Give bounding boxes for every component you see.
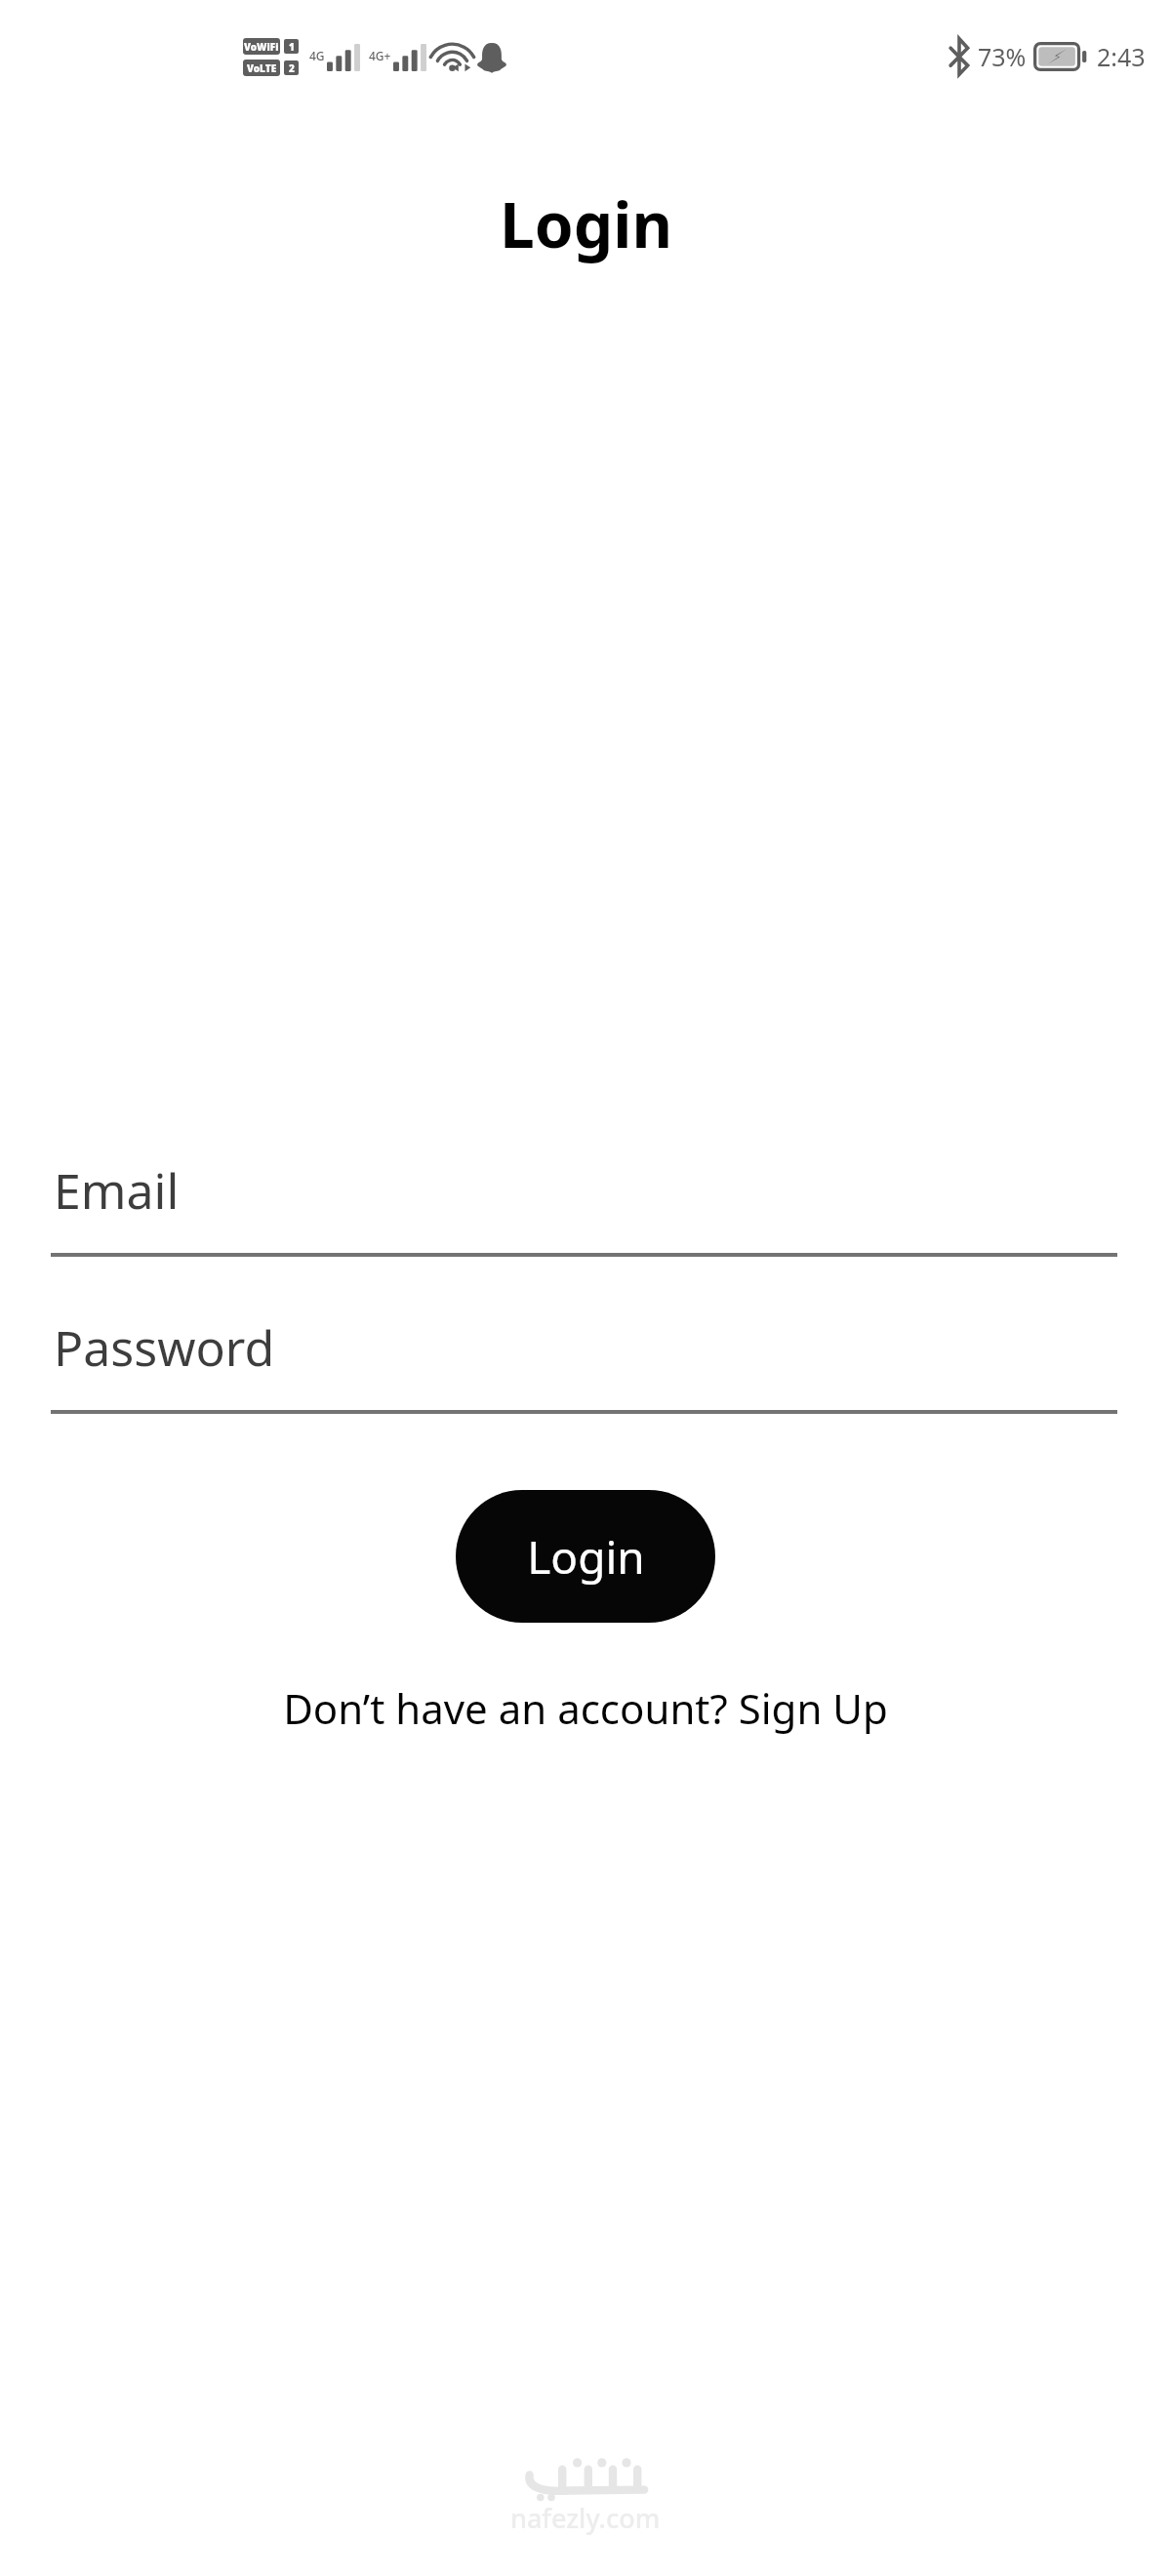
button[interactable]: Password [51, 1285, 1117, 1414]
staticText: Email [54, 1157, 180, 1224]
staticText: Password [54, 1314, 275, 1381]
staticText: Login [527, 1526, 645, 1588]
staticText: 4G [309, 48, 325, 63]
staticText: Don’t have an account? Sign Up [283, 1680, 888, 1736]
staticText: VoWiFi [244, 40, 279, 54]
button[interactable]: Email [51, 1128, 1117, 1257]
staticText: 2 [289, 61, 295, 75]
staticText: 4G+ [369, 48, 391, 63]
other: nafezly.com watermark [510, 2457, 661, 2536]
staticText: Login [500, 181, 672, 263]
staticText: 1 [289, 40, 295, 54]
staticText: 73% [978, 40, 1027, 73]
button[interactable]: Don’t have an account? Sign Up [273, 1674, 898, 1742]
button[interactable]: Login [456, 1490, 715, 1623]
staticText: VoLTE [247, 61, 277, 75]
staticText: 2:43 [1097, 40, 1146, 73]
staticText: nafezly.com [510, 2500, 661, 2536]
